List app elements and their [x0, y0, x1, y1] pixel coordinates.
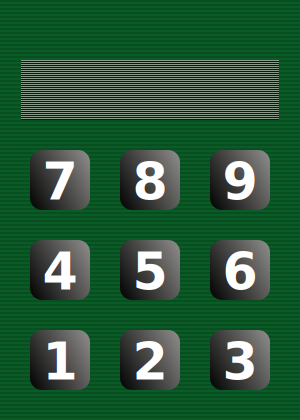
staticText: 2 — [132, 332, 167, 391]
button[interactable]: 8 — [120, 150, 180, 210]
staticText: 6 — [222, 242, 257, 301]
button[interactable]: 2 — [120, 330, 180, 390]
button[interactable]: 7 — [30, 150, 90, 210]
staticText: 9 — [222, 152, 257, 211]
button[interactable]: 1 — [30, 330, 90, 390]
staticText: 5 — [132, 242, 167, 301]
button[interactable]: 6 — [210, 240, 270, 300]
staticText: 4 — [42, 242, 77, 301]
button[interactable]: 4 — [30, 240, 90, 300]
button[interactable]: 5 — [120, 240, 180, 300]
button[interactable]: 3 — [210, 330, 270, 390]
staticText: 7 — [42, 152, 77, 211]
button[interactable]: 9 — [210, 150, 270, 210]
staticText: 1 — [42, 332, 77, 391]
staticText: 3 — [222, 332, 257, 391]
staticText: 8 — [132, 152, 167, 211]
